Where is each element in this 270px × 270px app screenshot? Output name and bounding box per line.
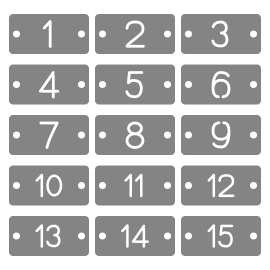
button[interactable] — [181, 14, 261, 54]
button[interactable] — [181, 115, 261, 155]
button[interactable] — [181, 216, 261, 256]
button[interactable] — [95, 216, 175, 256]
button[interactable] — [9, 216, 89, 256]
button[interactable] — [95, 165, 175, 205]
button[interactable] — [181, 165, 261, 205]
button[interactable] — [95, 115, 175, 155]
button[interactable] — [95, 64, 175, 104]
button[interactable] — [9, 64, 89, 104]
button[interactable] — [181, 64, 261, 104]
button[interactable] — [95, 14, 175, 54]
button[interactable] — [9, 165, 89, 205]
button[interactable] — [9, 14, 89, 54]
button[interactable] — [9, 115, 89, 155]
